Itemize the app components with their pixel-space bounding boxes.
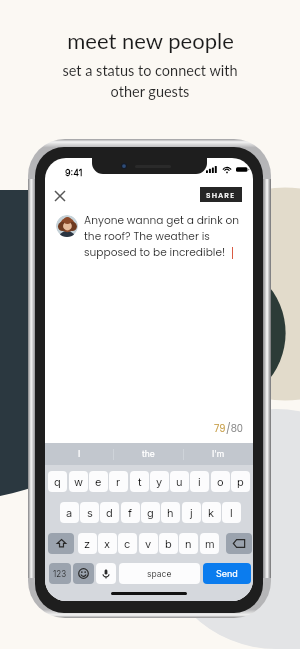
button[interactable]: l <box>222 502 241 523</box>
button[interactable]: o <box>211 471 230 492</box>
button[interactable]: m <box>200 533 219 554</box>
button[interactable]: I'm <box>184 443 253 465</box>
staticText: i <box>198 475 201 488</box>
button[interactable]: s <box>80 502 99 523</box>
staticText: set a status to connect with other guest… <box>62 62 238 100</box>
staticText: t <box>138 475 142 488</box>
staticText: b <box>165 537 172 550</box>
button[interactable]: space <box>119 563 200 584</box>
staticText: x <box>104 537 111 550</box>
button[interactable]: h <box>161 502 180 523</box>
button[interactable]: Close <box>46 182 74 210</box>
staticText: q <box>54 475 61 488</box>
staticText: /80 <box>226 422 243 436</box>
staticText: s <box>87 506 93 519</box>
button[interactable]: f <box>121 502 140 523</box>
button[interactable]: y <box>150 471 169 492</box>
staticText: Send <box>216 568 238 579</box>
button[interactable]: d <box>100 502 119 523</box>
button[interactable]: Shift <box>48 533 74 554</box>
button[interactable]: j <box>182 502 201 523</box>
staticText: p <box>237 475 244 488</box>
button[interactable]: 123 <box>49 563 71 584</box>
button[interactable]: e <box>89 471 108 492</box>
staticText: I <box>78 449 81 459</box>
staticText: d <box>106 506 113 519</box>
button[interactable]: i <box>190 471 209 492</box>
staticText: space <box>147 569 172 579</box>
button[interactable]: p <box>231 471 250 492</box>
staticText: f <box>128 506 133 519</box>
staticText: SHARE <box>206 190 236 200</box>
button[interactable]: I <box>45 443 113 465</box>
staticText: h <box>167 506 174 519</box>
button[interactable]: q <box>48 471 67 492</box>
staticText: g <box>147 506 154 519</box>
button[interactable]: Send <box>203 563 251 584</box>
staticText: a <box>66 506 73 519</box>
button[interactable]: g <box>141 502 160 523</box>
button[interactable]: v <box>139 533 158 554</box>
staticText: Anyone wanna get a drink on the roof? Th… <box>84 213 249 260</box>
staticText: k <box>208 506 215 519</box>
staticText: j <box>190 506 193 519</box>
button[interactable]: Backspace <box>226 533 252 554</box>
button[interactable]: a <box>60 502 79 523</box>
button[interactable]: n <box>179 533 198 554</box>
staticText: w <box>74 475 84 488</box>
button[interactable]: Microphone <box>96 563 116 584</box>
staticText: 123 <box>53 569 67 579</box>
staticText: y <box>156 475 163 488</box>
staticText: meet new people <box>67 27 234 53</box>
staticText: e <box>95 475 102 488</box>
staticText: n <box>185 537 192 550</box>
button[interactable]: x <box>98 533 117 554</box>
staticText: r <box>116 475 121 488</box>
staticText: l <box>230 506 233 519</box>
staticText: 79 <box>214 422 226 436</box>
button[interactable]: SHARE <box>200 187 242 202</box>
button[interactable]: k <box>202 502 221 523</box>
button[interactable]: the <box>114 443 183 465</box>
staticText: the <box>142 449 155 459</box>
button[interactable]: z <box>78 533 97 554</box>
button[interactable]: u <box>170 471 189 492</box>
button[interactable]: r <box>109 471 128 492</box>
button[interactable]: t <box>130 471 149 492</box>
button[interactable]: b <box>159 533 178 554</box>
button[interactable]: c <box>118 533 137 554</box>
staticText: I'm <box>212 449 225 459</box>
button[interactable]: w <box>69 471 88 492</box>
staticText: v <box>145 537 152 550</box>
staticText: c <box>124 537 131 550</box>
staticText: 9:41 <box>65 167 83 178</box>
staticText: o <box>217 475 224 488</box>
button[interactable]: Emoji <box>73 563 94 584</box>
staticText: m <box>205 537 215 550</box>
staticText: u <box>176 475 183 488</box>
staticText: z <box>84 537 91 550</box>
